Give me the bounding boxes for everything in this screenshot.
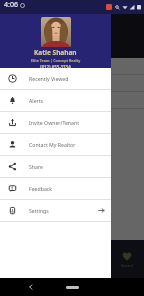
staticText: Contact My Realtor — [29, 141, 76, 148]
staticText: Katie Shahan — [34, 48, 77, 57]
staticText: Alerts — [29, 97, 44, 104]
button[interactable]: Home — [64, 282, 80, 292]
staticText: Roofing Systems — [4, 80, 44, 87]
staticText: Settings — [29, 207, 49, 214]
button[interactable]: Feedback — [0, 178, 111, 199]
button[interactable]: Back — [26, 282, 36, 292]
staticText: Foundation Repair — [4, 63, 48, 70]
button[interactable]: Recently Viewed — [0, 68, 111, 89]
staticText: Invite Owner/Tenant — [29, 119, 80, 126]
staticText: Feedback — [29, 185, 53, 192]
button[interactable]: Alerts — [0, 90, 111, 111]
staticText: Rooms — [4, 135, 30, 146]
staticText: Saved — [121, 263, 133, 269]
staticText: Share — [29, 163, 43, 170]
staticText: 4:06 — [4, 0, 18, 10]
button[interactable]: Contact My Realtor — [0, 134, 111, 155]
staticText: Recently Viewed — [29, 75, 69, 82]
button[interactable]: Invite Owner/Tenant — [0, 112, 111, 133]
button[interactable]: Saved — [110, 240, 144, 278]
staticText: Gutters — [4, 97, 22, 104]
staticText: (812) 655-3334 — [40, 64, 71, 68]
staticText: Elite Team | Concept Realty — [31, 58, 81, 63]
button[interactable]: Share — [0, 156, 111, 177]
button[interactable]: Settings — [0, 200, 111, 221]
